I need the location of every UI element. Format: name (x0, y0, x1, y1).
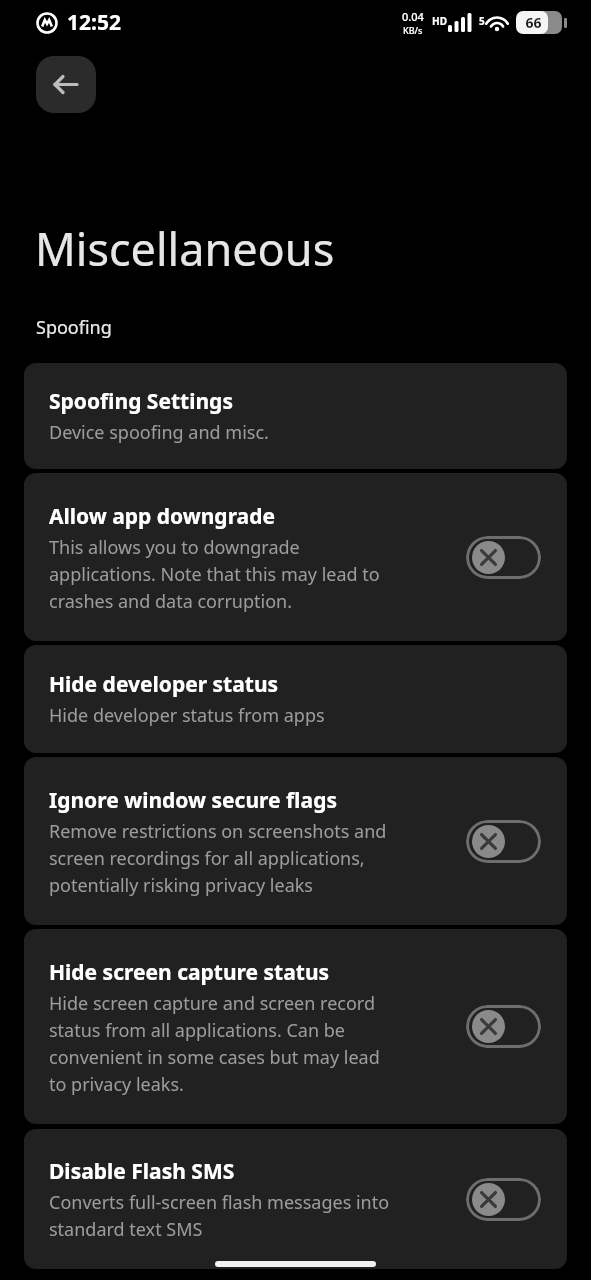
staticText: Converts full-screen flash messages into… (49, 1190, 390, 1241)
staticText: Device spoofing and misc. (49, 420, 269, 445)
staticText: This allows you to downgrade application… (49, 535, 380, 613)
staticText: Allow app downgrade (49, 502, 276, 531)
staticText: Miscellaneous (35, 218, 335, 279)
button[interactable]: Toggle setting (466, 820, 541, 863)
button[interactable]: Toggle setting (466, 1178, 541, 1221)
button[interactable]: Ignore window secure flags (24, 757, 567, 925)
button[interactable]: Hide screen capture status (24, 929, 567, 1124)
button[interactable]: Back (36, 56, 96, 113)
button[interactable]: Toggle setting (466, 536, 541, 579)
staticText: Spoofing (36, 315, 112, 340)
button[interactable]: Hide developer status (24, 645, 567, 753)
staticText: 0.04 (402, 9, 424, 24)
staticText: HD (432, 14, 447, 28)
button[interactable]: Spoofing Settings (24, 363, 567, 469)
staticText: Hide screen capture status (49, 958, 330, 987)
staticText: 5 (479, 14, 485, 28)
button[interactable]: Toggle setting (466, 1005, 541, 1048)
staticText: Ignore window secure flags (49, 786, 337, 815)
staticText: Disable Flash SMS (49, 1157, 235, 1186)
staticText: Hide developer status (49, 670, 279, 699)
staticText: 12:52 (67, 8, 121, 37)
staticText: KB/s (403, 24, 423, 36)
button[interactable]: Allow app downgrade (24, 473, 567, 641)
staticText: 66 (525, 13, 542, 32)
staticText: Hide developer status from apps (49, 703, 325, 728)
staticText: Spoofing Settings (49, 387, 233, 416)
staticText: Hide screen capture and screen record st… (49, 991, 380, 1096)
staticText: Remove restrictions on screenshots and s… (49, 819, 387, 897)
button[interactable]: Disable Flash SMS (24, 1129, 567, 1269)
